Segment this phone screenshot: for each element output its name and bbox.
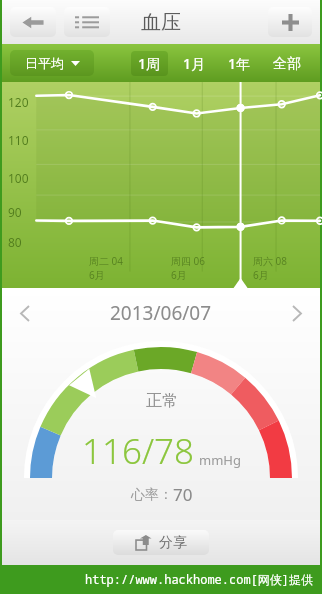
staticText: 正常 bbox=[146, 391, 178, 411]
staticText: 90 bbox=[8, 204, 22, 220]
staticText: 70 bbox=[173, 483, 193, 506]
staticText: 周四 06 bbox=[171, 254, 206, 268]
staticText: 1年 bbox=[228, 54, 251, 73]
staticText: 6月 bbox=[171, 268, 187, 282]
staticText: mmHg bbox=[199, 451, 241, 469]
staticText: 80 bbox=[8, 234, 22, 250]
staticText: 1月 bbox=[183, 54, 206, 73]
staticText: 100 bbox=[8, 170, 29, 186]
staticText: 6月 bbox=[89, 268, 105, 282]
staticText: 周二 04 bbox=[89, 254, 124, 268]
staticText: 110 bbox=[8, 132, 29, 148]
staticText: 全部 bbox=[273, 55, 301, 73]
staticText: http://www.hackhome.com[网侠]提供 bbox=[85, 571, 314, 587]
button[interactable]: 全部 bbox=[266, 52, 308, 76]
staticText: 心率： bbox=[131, 486, 173, 504]
button[interactable]: 日平均 bbox=[10, 50, 94, 76]
button[interactable]: List bbox=[64, 7, 110, 37]
staticText: 血压 bbox=[141, 10, 181, 35]
staticText: 120 bbox=[8, 94, 29, 110]
button[interactable]: Previous day bbox=[12, 300, 38, 326]
button[interactable]: 1年 bbox=[221, 51, 258, 76]
staticText: 分享 bbox=[159, 534, 187, 552]
button[interactable]: 1月 bbox=[176, 51, 213, 76]
button[interactable]: Next day bbox=[284, 300, 310, 326]
staticText: 1周 bbox=[138, 54, 161, 73]
staticText: 2013/06/07 bbox=[110, 300, 212, 326]
staticText: 周六 08 bbox=[253, 254, 288, 268]
staticText: 6月 bbox=[253, 268, 269, 282]
staticText: 日平均 bbox=[25, 55, 64, 71]
button[interactable]: 分享 bbox=[113, 530, 209, 555]
staticText: 116/78 bbox=[82, 427, 195, 475]
button[interactable]: 1周 bbox=[131, 51, 168, 76]
button[interactable]: Back bbox=[10, 7, 56, 37]
button[interactable]: Add bbox=[268, 7, 312, 37]
